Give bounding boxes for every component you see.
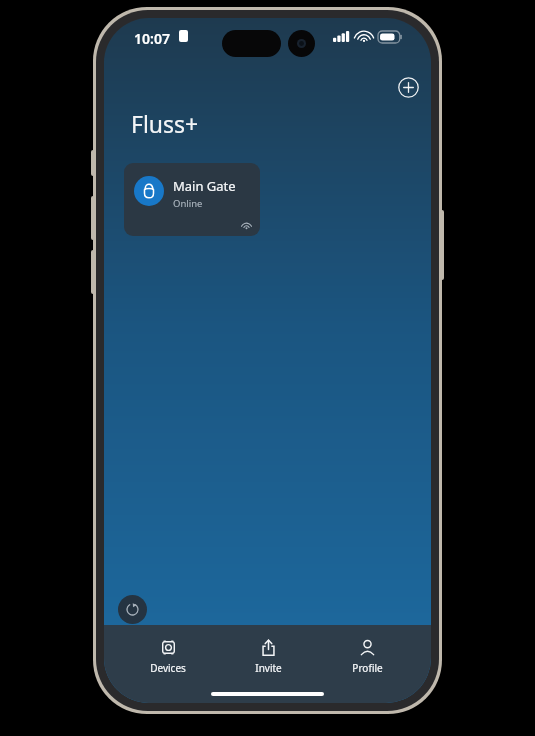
button[interactable]: Invite [233,636,303,677]
button[interactable]: Devices [133,636,203,677]
staticText: Invite [255,661,282,675]
staticText: Main Gate [173,177,236,195]
staticText: Devices [150,661,186,675]
button[interactable]: Main Gate [124,163,260,236]
button[interactable]: Profile [332,636,402,677]
button[interactable]: Add device [395,74,421,100]
staticText: Online [173,197,203,210]
staticText: Fluss+ [131,108,199,139]
staticText: 10:07 [134,29,170,48]
staticText: Profile [352,661,383,675]
button[interactable]: Refresh [118,595,147,624]
